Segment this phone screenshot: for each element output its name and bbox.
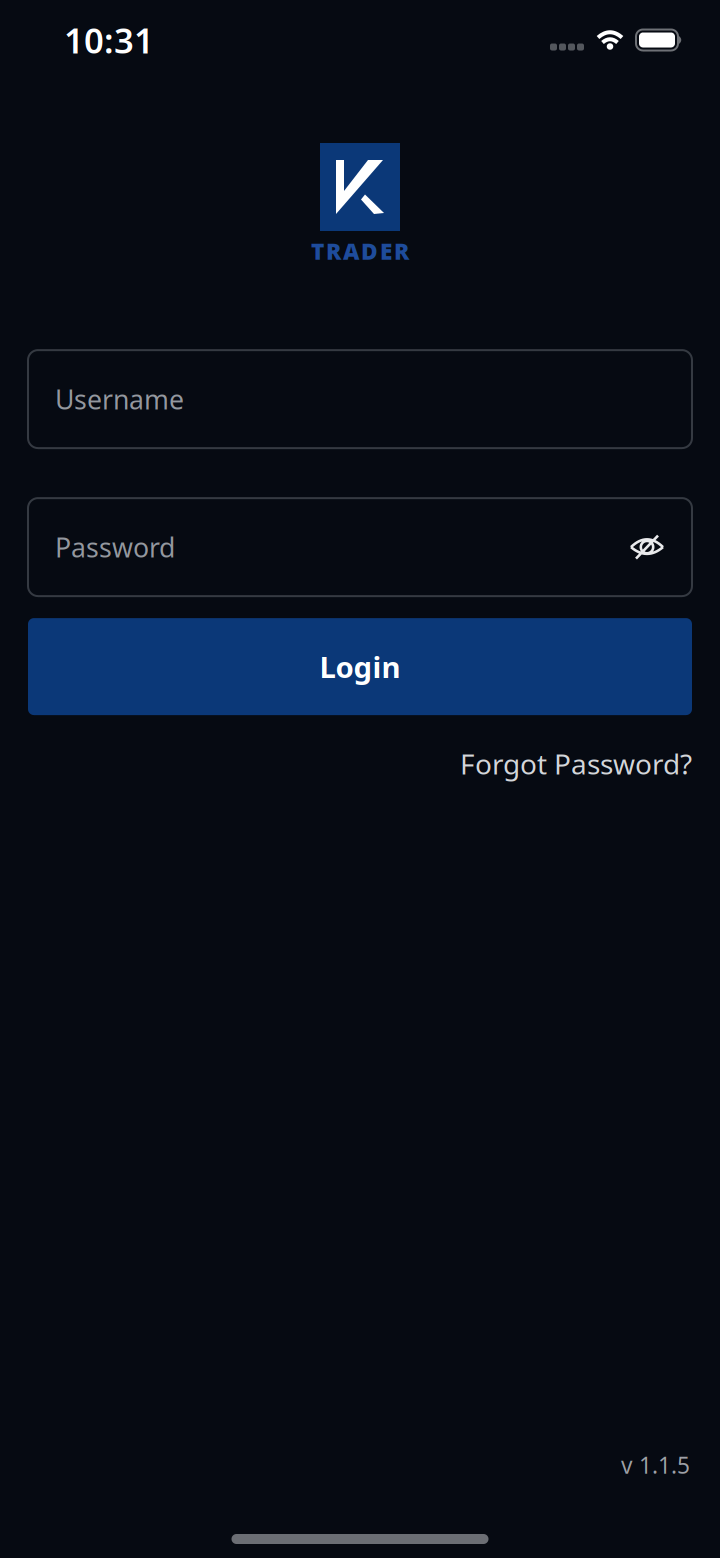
button[interactable]: Login (28, 618, 692, 715)
staticText: TRADER (311, 236, 409, 266)
staticText: Username (55, 381, 184, 417)
button[interactable]: Show password (630, 535, 692, 560)
staticText: v 1.1.5 (621, 1450, 690, 1480)
staticText: Login (319, 647, 400, 686)
staticText: Forgot Password? (460, 745, 692, 782)
staticText: Password (55, 529, 175, 565)
button[interactable]: Forgot Password? (460, 745, 692, 782)
staticText: 10:31 (64, 17, 154, 63)
